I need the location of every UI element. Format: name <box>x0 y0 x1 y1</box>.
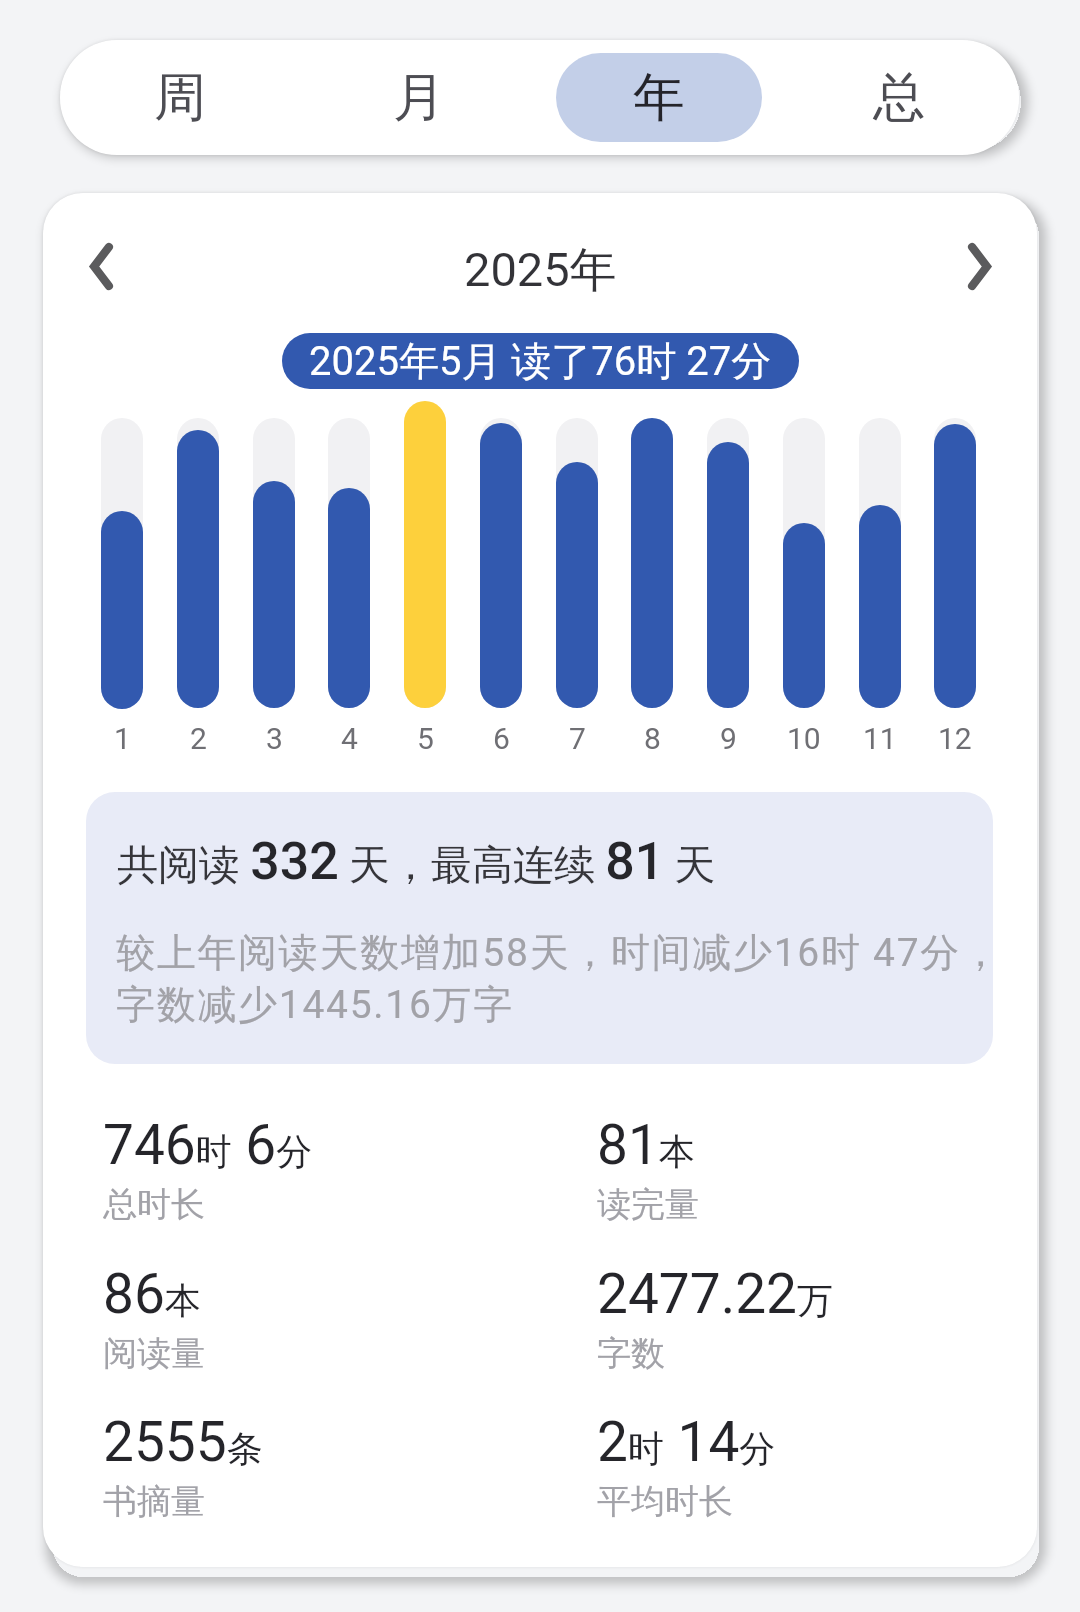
staticText: 总时长 <box>103 1183 205 1226</box>
button[interactable]: Previous year <box>59 224 144 309</box>
staticText: 5 <box>417 721 434 756</box>
staticText: 2477.22万 <box>597 1262 833 1326</box>
button[interactable]: 746时 6分 <box>103 1113 543 1226</box>
button[interactable] <box>783 523 825 708</box>
staticText: 2时 14分 <box>597 1410 776 1474</box>
staticText: 较上年阅读天数增加58天，时间减少16时 47分， 字数减少1445.16万字 <box>116 928 993 1029</box>
staticText: 读完量 <box>597 1183 699 1226</box>
button[interactable] <box>707 442 749 708</box>
button[interactable]: Next year <box>937 224 1022 309</box>
staticText: 共阅读 332 天，最高连续 81 天 <box>117 831 716 892</box>
button[interactable] <box>101 511 143 709</box>
button[interactable]: 周 <box>77 53 282 142</box>
button[interactable] <box>859 505 901 708</box>
button[interactable] <box>934 424 976 708</box>
staticText: 1 <box>114 721 131 756</box>
staticText: 12 <box>938 721 972 756</box>
staticText: 10 <box>787 721 821 756</box>
button[interactable]: 86本 <box>103 1262 543 1375</box>
button[interactable] <box>177 430 219 708</box>
staticText: 阅读量 <box>103 1332 205 1375</box>
button[interactable] <box>480 423 522 708</box>
staticText: 月 <box>393 65 445 131</box>
staticText: 2555条 <box>103 1410 263 1474</box>
staticText: 2025年5月 读了76时 27分 <box>309 336 772 386</box>
staticText: 2 <box>190 721 207 756</box>
staticText: 7 <box>569 721 586 756</box>
button[interactable] <box>631 418 673 708</box>
staticText: 书摘量 <box>103 1480 205 1523</box>
button[interactable] <box>556 462 598 708</box>
staticText: 平均时长 <box>597 1480 733 1523</box>
button[interactable]: 81本 <box>597 1113 1037 1226</box>
staticText: 4 <box>341 721 358 756</box>
button[interactable] <box>404 401 446 708</box>
button[interactable]: 年 <box>556 53 762 142</box>
staticText: 746时 6分 <box>103 1113 313 1177</box>
staticText: 2025年 <box>464 241 617 300</box>
staticText: 6 <box>493 721 510 756</box>
staticText: 总 <box>873 65 925 131</box>
button[interactable] <box>253 481 295 708</box>
staticText: 3 <box>266 721 283 756</box>
button[interactable]: 总 <box>796 53 1002 142</box>
staticText: 8 <box>644 721 661 756</box>
staticText: 周 <box>154 65 206 131</box>
staticText: 年 <box>633 65 685 131</box>
staticText: 86本 <box>103 1262 201 1326</box>
button[interactable]: 月 <box>316 53 522 142</box>
staticText: 9 <box>720 721 737 756</box>
staticText: 81本 <box>597 1113 695 1177</box>
button[interactable] <box>328 488 370 708</box>
button[interactable]: 2477.22万 <box>597 1262 1037 1375</box>
staticText: 字数 <box>597 1332 665 1375</box>
staticText: 11 <box>863 721 897 756</box>
button[interactable]: 2时 14分 <box>597 1410 1037 1523</box>
button[interactable]: 2555条 <box>103 1410 543 1523</box>
